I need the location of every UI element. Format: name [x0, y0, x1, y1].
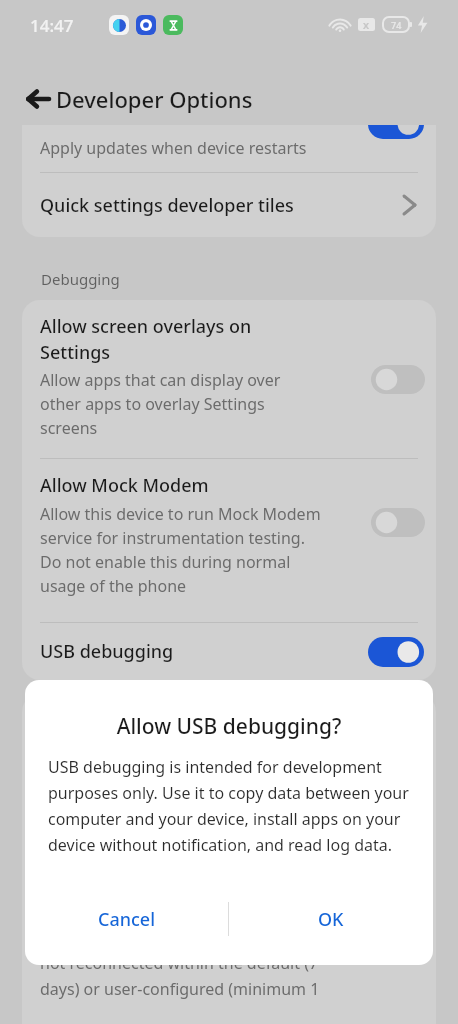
staticText: Allow this device to run Mock Modem serv…: [40, 503, 321, 597]
staticText: Allow screen overlays on Settings: [40, 314, 252, 364]
staticText: OK: [318, 907, 344, 932]
button[interactable]: Back: [16, 77, 60, 121]
button[interactable]: Cancel: [25, 888, 228, 950]
staticText: Debugging: [41, 269, 120, 289]
staticText: 74: [391, 19, 402, 31]
button[interactable]: Quick settings developer tiles: [22, 173, 436, 237]
staticText: USB debugging is intended for developmen…: [48, 756, 410, 856]
staticText: Allow apps that can display over other a…: [40, 369, 281, 439]
staticText: Apply updates when device restarts: [40, 137, 307, 159]
staticText: USB debugging: [40, 639, 174, 664]
staticText: X: [363, 19, 370, 31]
staticText: 14:47: [30, 14, 74, 37]
staticText: Quick settings developer tiles: [40, 193, 294, 218]
staticText: Cancel: [98, 907, 156, 932]
button[interactable]: Allow screen overlays on Settings: [22, 300, 436, 458]
staticText: not reconnected within the default (7 da…: [40, 952, 320, 1000]
staticText: Allow Mock Modem: [40, 473, 209, 498]
button[interactable]: OK: [229, 888, 433, 950]
button[interactable]: Allow Mock Modem: [22, 459, 436, 622]
staticText: Allow USB debugging?: [25, 712, 433, 741]
button[interactable]: USB debugging: [22, 623, 436, 680]
staticText: Developer Options: [56, 84, 253, 114]
